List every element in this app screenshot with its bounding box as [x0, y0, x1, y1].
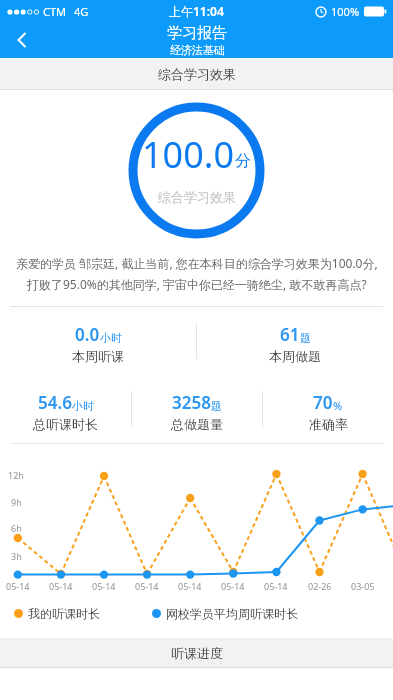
staticText: 学习报告 — [167, 24, 227, 43]
staticText: 3258 — [172, 391, 211, 414]
staticText: 综合学习效果 — [158, 189, 236, 205]
staticText: 上午11:04 — [169, 3, 224, 19]
staticText: 我的听课时长 — [28, 606, 100, 621]
button[interactable] — [0, 22, 44, 58]
staticText: 100.0 — [142, 130, 235, 179]
staticText: 05-14 — [92, 580, 116, 592]
staticText: 总听课时长 — [33, 416, 98, 432]
staticText: 题 — [300, 331, 311, 345]
staticText: 100% — [331, 4, 360, 19]
staticText: 题 — [211, 399, 222, 413]
staticText: 03-05 — [351, 580, 375, 592]
staticText: 4G — [74, 4, 89, 19]
staticText: 总做题量 — [171, 416, 223, 432]
staticText: 经济法基础 — [170, 43, 225, 57]
staticText: 本周听课 — [72, 348, 124, 364]
staticText: 12h — [8, 469, 24, 481]
staticText: CTM — [43, 4, 67, 19]
staticText: 6h — [11, 522, 22, 534]
staticText: 分 — [235, 151, 251, 171]
staticText: 准确率 — [309, 416, 348, 432]
staticText: 05-14 — [49, 580, 73, 592]
staticText: % — [333, 398, 343, 413]
staticText: 小时 — [72, 399, 94, 413]
staticText: 54.6 — [38, 391, 72, 414]
staticText: 小时 — [100, 331, 122, 345]
staticText: 05-14 — [221, 580, 245, 592]
staticText: 61 — [280, 323, 300, 346]
staticText: 综合学习效果 — [158, 66, 236, 82]
staticText: 70 — [313, 391, 333, 414]
staticText: 02-26 — [308, 580, 332, 592]
staticText: 05-14 — [135, 580, 159, 592]
staticText: 0.0 — [75, 323, 100, 346]
staticText: 9h — [11, 496, 22, 508]
staticText: 3h — [11, 550, 22, 562]
staticText: 05-14 — [178, 580, 202, 592]
staticText: 听课进度 — [171, 645, 223, 661]
staticText: 亲爱的学员 邹宗廷, 截止当前, 您在本科目的综合学习效果为100.0分, — [16, 255, 378, 271]
staticText: 打败了95.0%的其他同学, 宇宙中你已经一骑绝尘, 敢不敢再高点? — [27, 276, 367, 292]
staticText: 05-14 — [6, 580, 30, 592]
staticText: 网校学员平均周听课时长 — [166, 606, 298, 621]
staticText: 本周做题 — [269, 348, 321, 364]
staticText: 05-14 — [264, 580, 288, 592]
